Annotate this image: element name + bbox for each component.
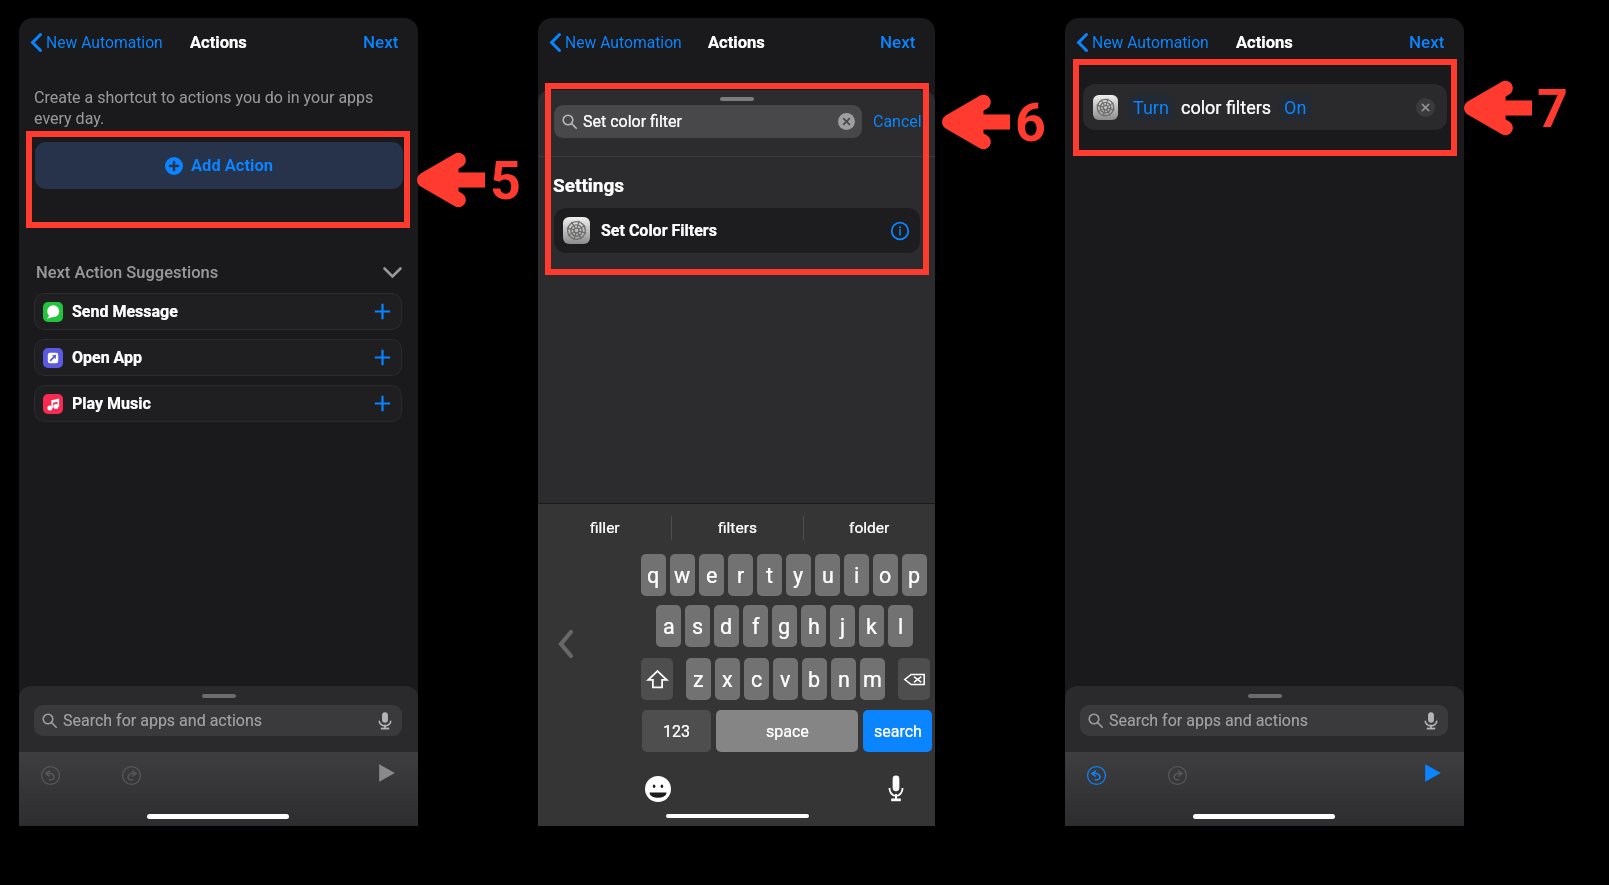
staticText: On <box>1284 97 1307 118</box>
button[interactable]: a <box>656 605 681 647</box>
button[interactable]: q <box>641 554 666 596</box>
other: Emoji <box>645 776 671 802</box>
button[interactable]: Remove action <box>1416 98 1435 117</box>
button[interactable]: c <box>744 658 769 700</box>
button[interactable]: folder <box>803 504 935 551</box>
button[interactable]: Add Action <box>35 142 403 189</box>
button[interactable]: x <box>715 658 740 700</box>
staticText: color filters <box>1181 97 1272 118</box>
button[interactable]: Undo <box>41 766 60 785</box>
button[interactable]: u <box>815 554 840 596</box>
button[interactable]: Redo <box>122 766 141 785</box>
button[interactable]: p <box>902 554 927 596</box>
button[interactable]: f <box>743 605 768 647</box>
button[interactable]: r <box>728 554 753 596</box>
button[interactable]: Set Color Filters <box>554 208 920 253</box>
button[interactable]: Clear <box>838 113 855 130</box>
staticText: i <box>854 563 860 588</box>
button[interactable]: New Automation <box>550 24 682 60</box>
staticText: q <box>647 563 660 588</box>
staticText: b <box>808 667 821 692</box>
button[interactable]: t <box>757 554 782 596</box>
staticText: f <box>752 614 760 639</box>
button[interactable]: o <box>873 554 898 596</box>
button[interactable]: Set color filter <box>554 105 862 138</box>
button[interactable]: Next <box>363 32 399 52</box>
button[interactable]: z <box>686 658 711 700</box>
staticText: c <box>751 667 763 692</box>
button[interactable]: v <box>773 658 798 700</box>
staticText: folder <box>849 519 890 537</box>
button[interactable]: New Automation <box>31 24 163 60</box>
staticText: filters <box>718 519 757 537</box>
staticText: Set color filter <box>583 112 682 131</box>
button[interactable]: h <box>801 605 826 647</box>
button[interactable]: i <box>844 554 869 596</box>
button[interactable]: Next <box>880 32 916 52</box>
button[interactable]: 123 <box>642 710 711 752</box>
staticText: l <box>898 614 904 639</box>
button[interactable]: search <box>863 710 932 752</box>
other: Info <box>891 222 909 240</box>
staticText: Turn <box>1133 97 1169 118</box>
staticText: New Automation <box>46 33 163 51</box>
staticText: Actions <box>1236 33 1293 52</box>
button[interactable]: New Automation <box>1077 24 1209 60</box>
button[interactable]: e <box>699 554 724 596</box>
staticText: New Automation <box>1092 33 1209 51</box>
staticText: search <box>874 722 922 741</box>
button[interactable]: y <box>786 554 811 596</box>
button[interactable]: l <box>888 605 913 647</box>
button[interactable]: n <box>831 658 856 700</box>
button[interactable]: Cancel <box>873 112 922 131</box>
button[interactable]: Run <box>1423 762 1445 784</box>
button[interactable]: g <box>772 605 797 647</box>
other: Previous <box>559 630 573 658</box>
button[interactable]: m <box>860 658 885 700</box>
button[interactable]: j <box>830 605 855 647</box>
button[interactable]: Shift <box>641 658 673 700</box>
button[interactable]: Backspace <box>898 658 930 700</box>
staticText: Settings <box>553 174 625 196</box>
staticText: Actions <box>708 33 765 52</box>
button[interactable]: b <box>802 658 827 700</box>
button[interactable]: Play Music <box>34 385 402 422</box>
button[interactable]: Run <box>377 762 399 784</box>
staticText: filler <box>590 519 620 537</box>
button[interactable]: Next Action Suggestions <box>36 260 402 284</box>
button[interactable]: Search for apps and actions <box>1080 705 1448 736</box>
staticText: w <box>674 563 691 588</box>
staticText: u <box>822 563 834 588</box>
staticText: x <box>722 667 733 692</box>
staticText: Search for apps and actions <box>1109 711 1309 730</box>
staticText: y <box>793 563 804 588</box>
staticText: e <box>706 563 718 588</box>
button[interactable]: Undo <box>1087 766 1106 785</box>
button[interactable]: s <box>685 605 710 647</box>
staticText: n <box>838 667 850 692</box>
staticText: z <box>693 667 704 692</box>
button[interactable]: Next <box>1409 32 1445 52</box>
staticText: Search for apps and actions <box>63 711 263 730</box>
button[interactable]: Open App <box>34 339 402 376</box>
staticText: o <box>879 563 892 588</box>
button[interactable]: filler <box>538 504 671 551</box>
other: Dictate <box>1424 712 1438 730</box>
other: Dictate <box>888 775 904 802</box>
button[interactable]: d <box>714 605 739 647</box>
button[interactable]: Send Message <box>34 293 402 330</box>
staticText: Create a shortcut to actions you do in y… <box>34 88 374 128</box>
button[interactable]: Turn <box>1083 84 1447 130</box>
staticText: 7 <box>1537 77 1568 140</box>
button[interactable]: w <box>670 554 695 596</box>
staticText: 6 <box>1015 91 1046 154</box>
staticText: Open App <box>72 348 143 367</box>
staticText: 5 <box>490 149 521 212</box>
button[interactable]: filters <box>671 504 803 551</box>
button[interactable]: Redo <box>1168 766 1187 785</box>
button[interactable]: k <box>859 605 884 647</box>
button[interactable]: Search for apps and actions <box>34 705 402 736</box>
staticText: Send Message <box>72 302 178 321</box>
button[interactable]: space <box>716 710 858 752</box>
staticText: Play Music <box>72 394 151 413</box>
